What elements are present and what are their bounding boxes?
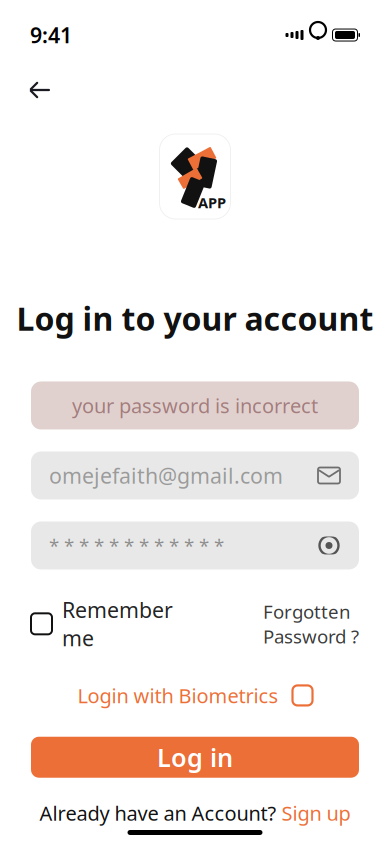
button[interactable]: Back: [18, 70, 62, 110]
button[interactable]: Forgotten Password ?: [263, 599, 359, 649]
staticText: Log in: [157, 740, 233, 774]
staticText: Sign up: [281, 800, 350, 826]
staticText: Log in to your account: [16, 297, 373, 339]
button[interactable]: Sign up: [281, 800, 350, 826]
button[interactable]: * * * * * * * * * * * *: [31, 521, 359, 569]
staticText: Login with Biometrics: [77, 682, 278, 709]
staticText: your password is incorrect: [72, 392, 318, 419]
staticText: * * * * * * * * * * * *: [49, 533, 224, 558]
button[interactable]: Login with Biometrics: [77, 682, 312, 709]
staticText: Remember me: [62, 595, 173, 652]
staticText: Already have an Account?: [39, 800, 276, 826]
staticText: omejefaith@gmail.com: [49, 461, 283, 490]
button[interactable]: Log in: [31, 737, 359, 778]
button[interactable]: Remember me: [31, 595, 173, 652]
staticText: APP: [198, 193, 226, 212]
staticText: 9:41: [30, 21, 72, 49]
button[interactable]: omejefaith@gmail.com: [31, 451, 359, 499]
staticText: Forgotten Password ?: [263, 599, 359, 649]
